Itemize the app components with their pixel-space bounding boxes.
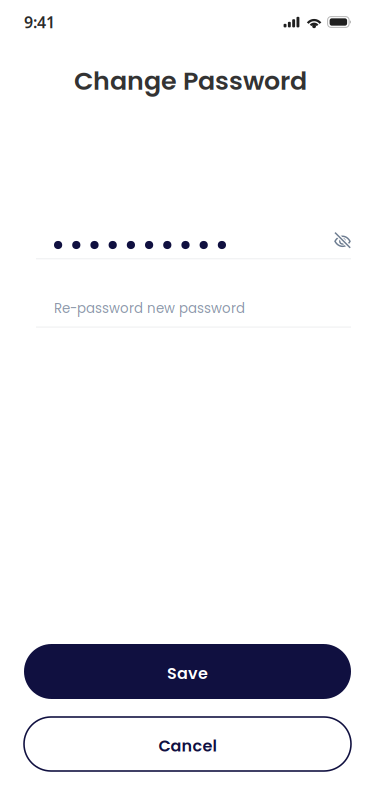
button[interactable]: Save [24, 644, 351, 699]
staticText: Cancel [158, 735, 216, 757]
staticText: Re-password new password [54, 299, 245, 318]
button[interactable]: Cancel [24, 717, 351, 771]
staticText: Change Password [74, 63, 307, 99]
staticText: 9:41 [24, 11, 55, 33]
button[interactable]: Show password [325, 232, 351, 258]
staticText: Save [167, 662, 208, 685]
